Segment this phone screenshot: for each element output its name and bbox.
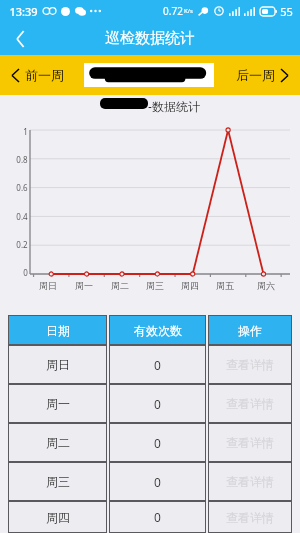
staticText: 1 [23, 126, 28, 137]
staticText: 周日 [39, 280, 57, 291]
button[interactable]: 查看详情 [208, 423, 292, 462]
staticText: 周日 [46, 357, 70, 372]
staticText: 查看详情 [226, 435, 274, 450]
button[interactable] [84, 63, 214, 87]
staticText: 13:39 [9, 4, 38, 19]
button[interactable]: 查看详情 [208, 384, 292, 423]
staticText: 巡检数据统计 [105, 29, 195, 48]
staticText: -数据统计 [148, 98, 200, 114]
staticText: 前一周 [25, 67, 64, 83]
staticText: 周六 [257, 280, 275, 291]
staticText: 后一周 [236, 67, 275, 83]
staticText: 周一 [75, 280, 93, 291]
staticText: 操作 [238, 323, 262, 338]
staticText: 查看详情 [226, 396, 274, 411]
staticText: 查看详情 [226, 510, 274, 525]
staticText: 周二 [46, 435, 70, 450]
staticText: 查看详情 [226, 474, 274, 489]
staticText: 周二 [111, 280, 129, 291]
staticText: 0.6 [16, 182, 28, 193]
staticText: 周三 [146, 280, 164, 291]
staticText: 0.72 [163, 4, 183, 18]
staticText: 周五 [216, 280, 234, 291]
button[interactable]: 前一周 [12, 55, 64, 95]
staticText: 0.2 [16, 239, 28, 250]
button[interactable]: 查看详情 [208, 501, 292, 533]
staticText: 0 [23, 267, 28, 278]
staticText: 有效次数 [134, 323, 182, 338]
staticText: 周一 [46, 396, 70, 411]
staticText: 0 [154, 357, 161, 373]
staticText: 0 [154, 474, 161, 490]
staticText: 查看详情 [226, 357, 274, 372]
staticText: 周四 [181, 280, 199, 291]
staticText: 周三 [46, 474, 70, 489]
button[interactable]: 查看详情 [208, 345, 292, 384]
staticText: 日期 [46, 323, 70, 338]
staticText: K/s [184, 7, 193, 15]
staticText: 0 [154, 509, 161, 525]
button[interactable]: 查看详情 [208, 462, 292, 501]
staticText: 0.4 [16, 211, 28, 222]
staticText: 0 [154, 435, 161, 451]
staticText: 0 [154, 396, 161, 412]
button[interactable]: 后一周 [236, 55, 288, 95]
staticText: 0.8 [16, 154, 28, 165]
staticText: 55 [280, 4, 293, 19]
button[interactable]: Back [0, 22, 40, 55]
staticText: 周四 [46, 510, 70, 525]
